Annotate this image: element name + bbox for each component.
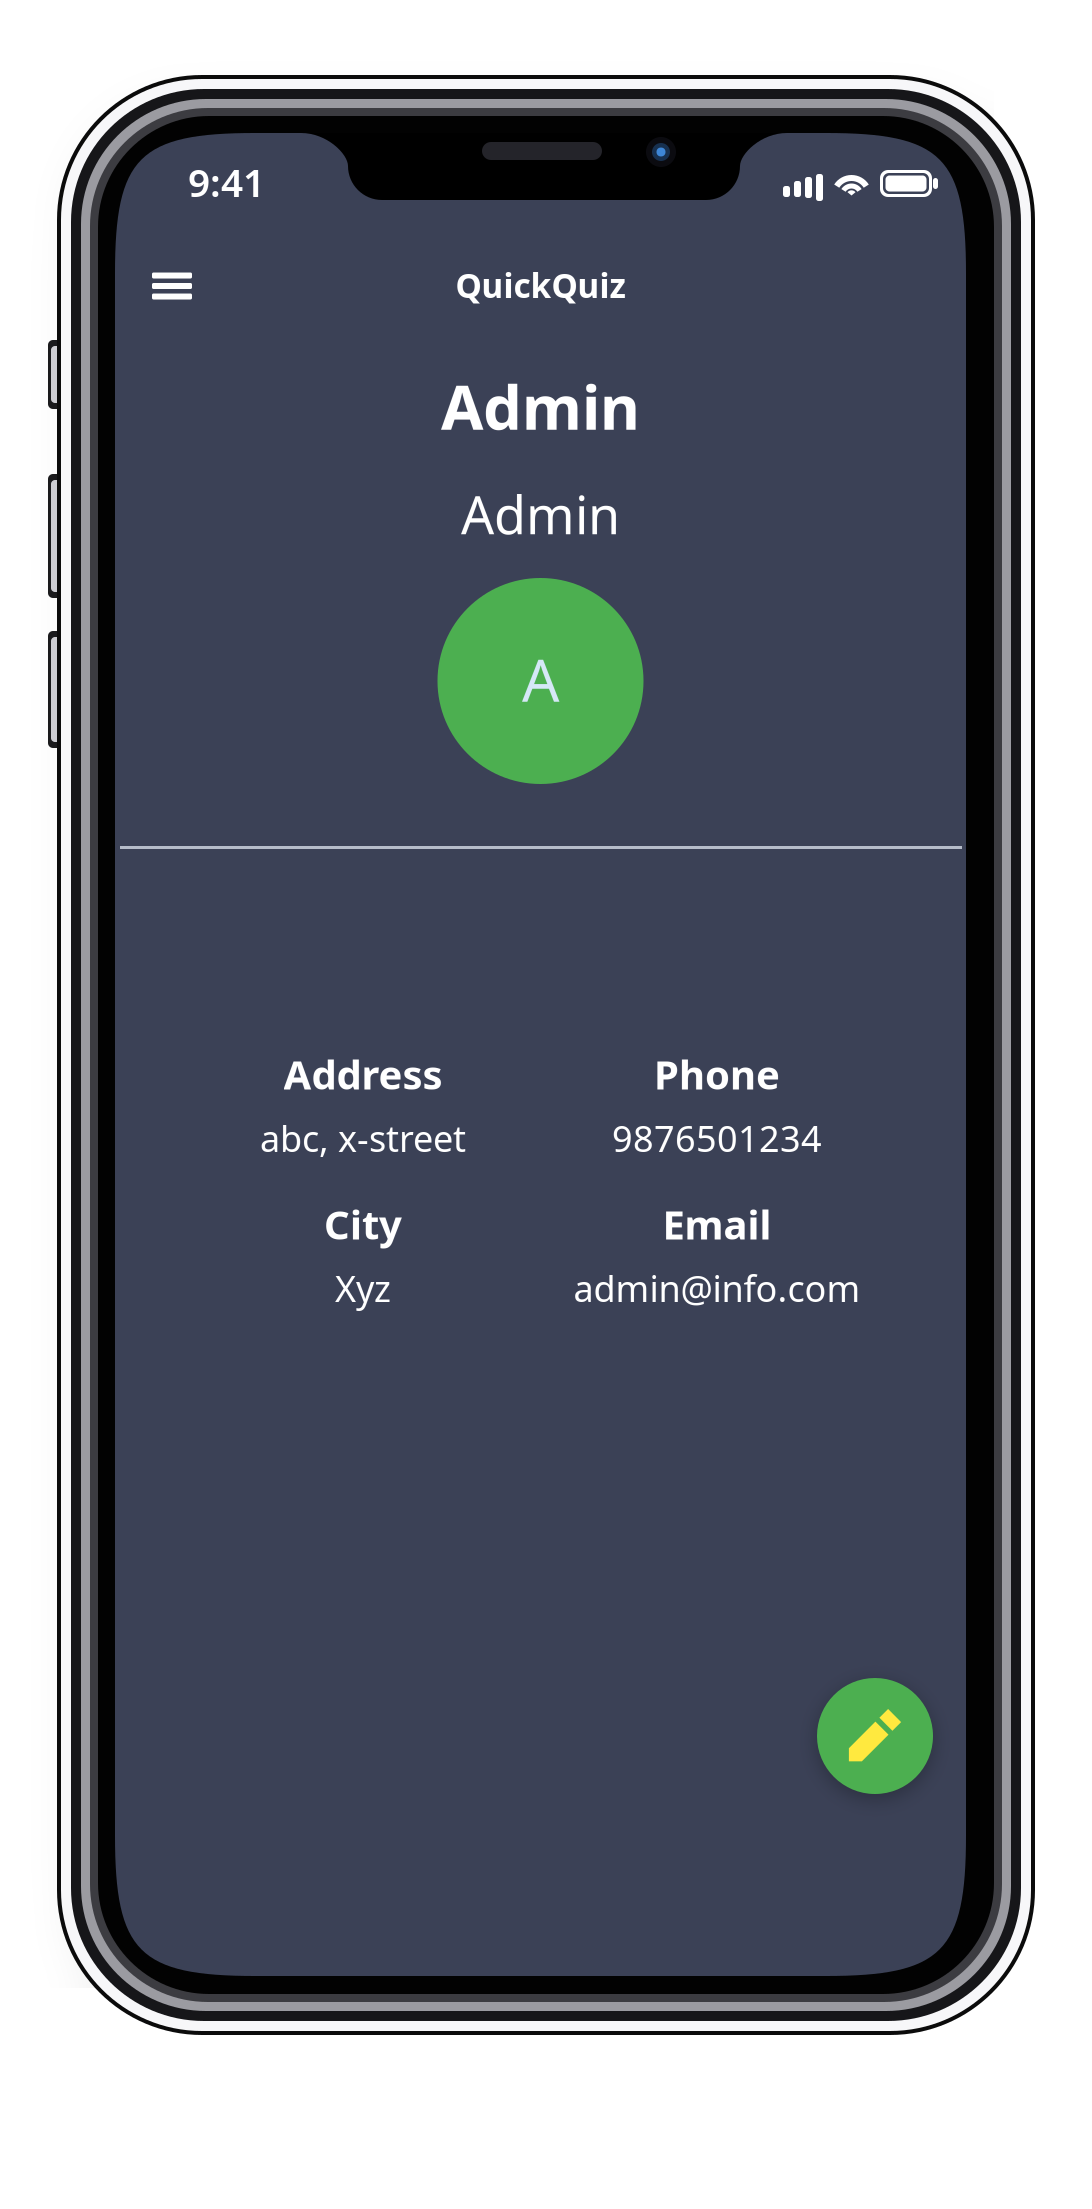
staticText: Admin xyxy=(461,479,620,549)
staticText: A xyxy=(522,640,559,718)
staticText: Admin xyxy=(441,365,640,447)
staticText: Email xyxy=(662,1197,771,1250)
button[interactable]: Menu xyxy=(134,251,210,321)
staticText: Phone xyxy=(654,1047,780,1100)
staticText: City xyxy=(324,1197,402,1250)
staticText: QuickQuiz xyxy=(455,263,625,307)
staticText: Address xyxy=(283,1047,442,1100)
staticText: admin@info.com xyxy=(573,1264,860,1312)
button[interactable]: Edit profile xyxy=(817,1678,933,1794)
staticText: abc, x-street xyxy=(260,1114,466,1162)
staticText: Xyz xyxy=(335,1264,391,1312)
staticText: 9876501234 xyxy=(612,1114,822,1162)
staticText: 9:41 xyxy=(188,156,265,208)
